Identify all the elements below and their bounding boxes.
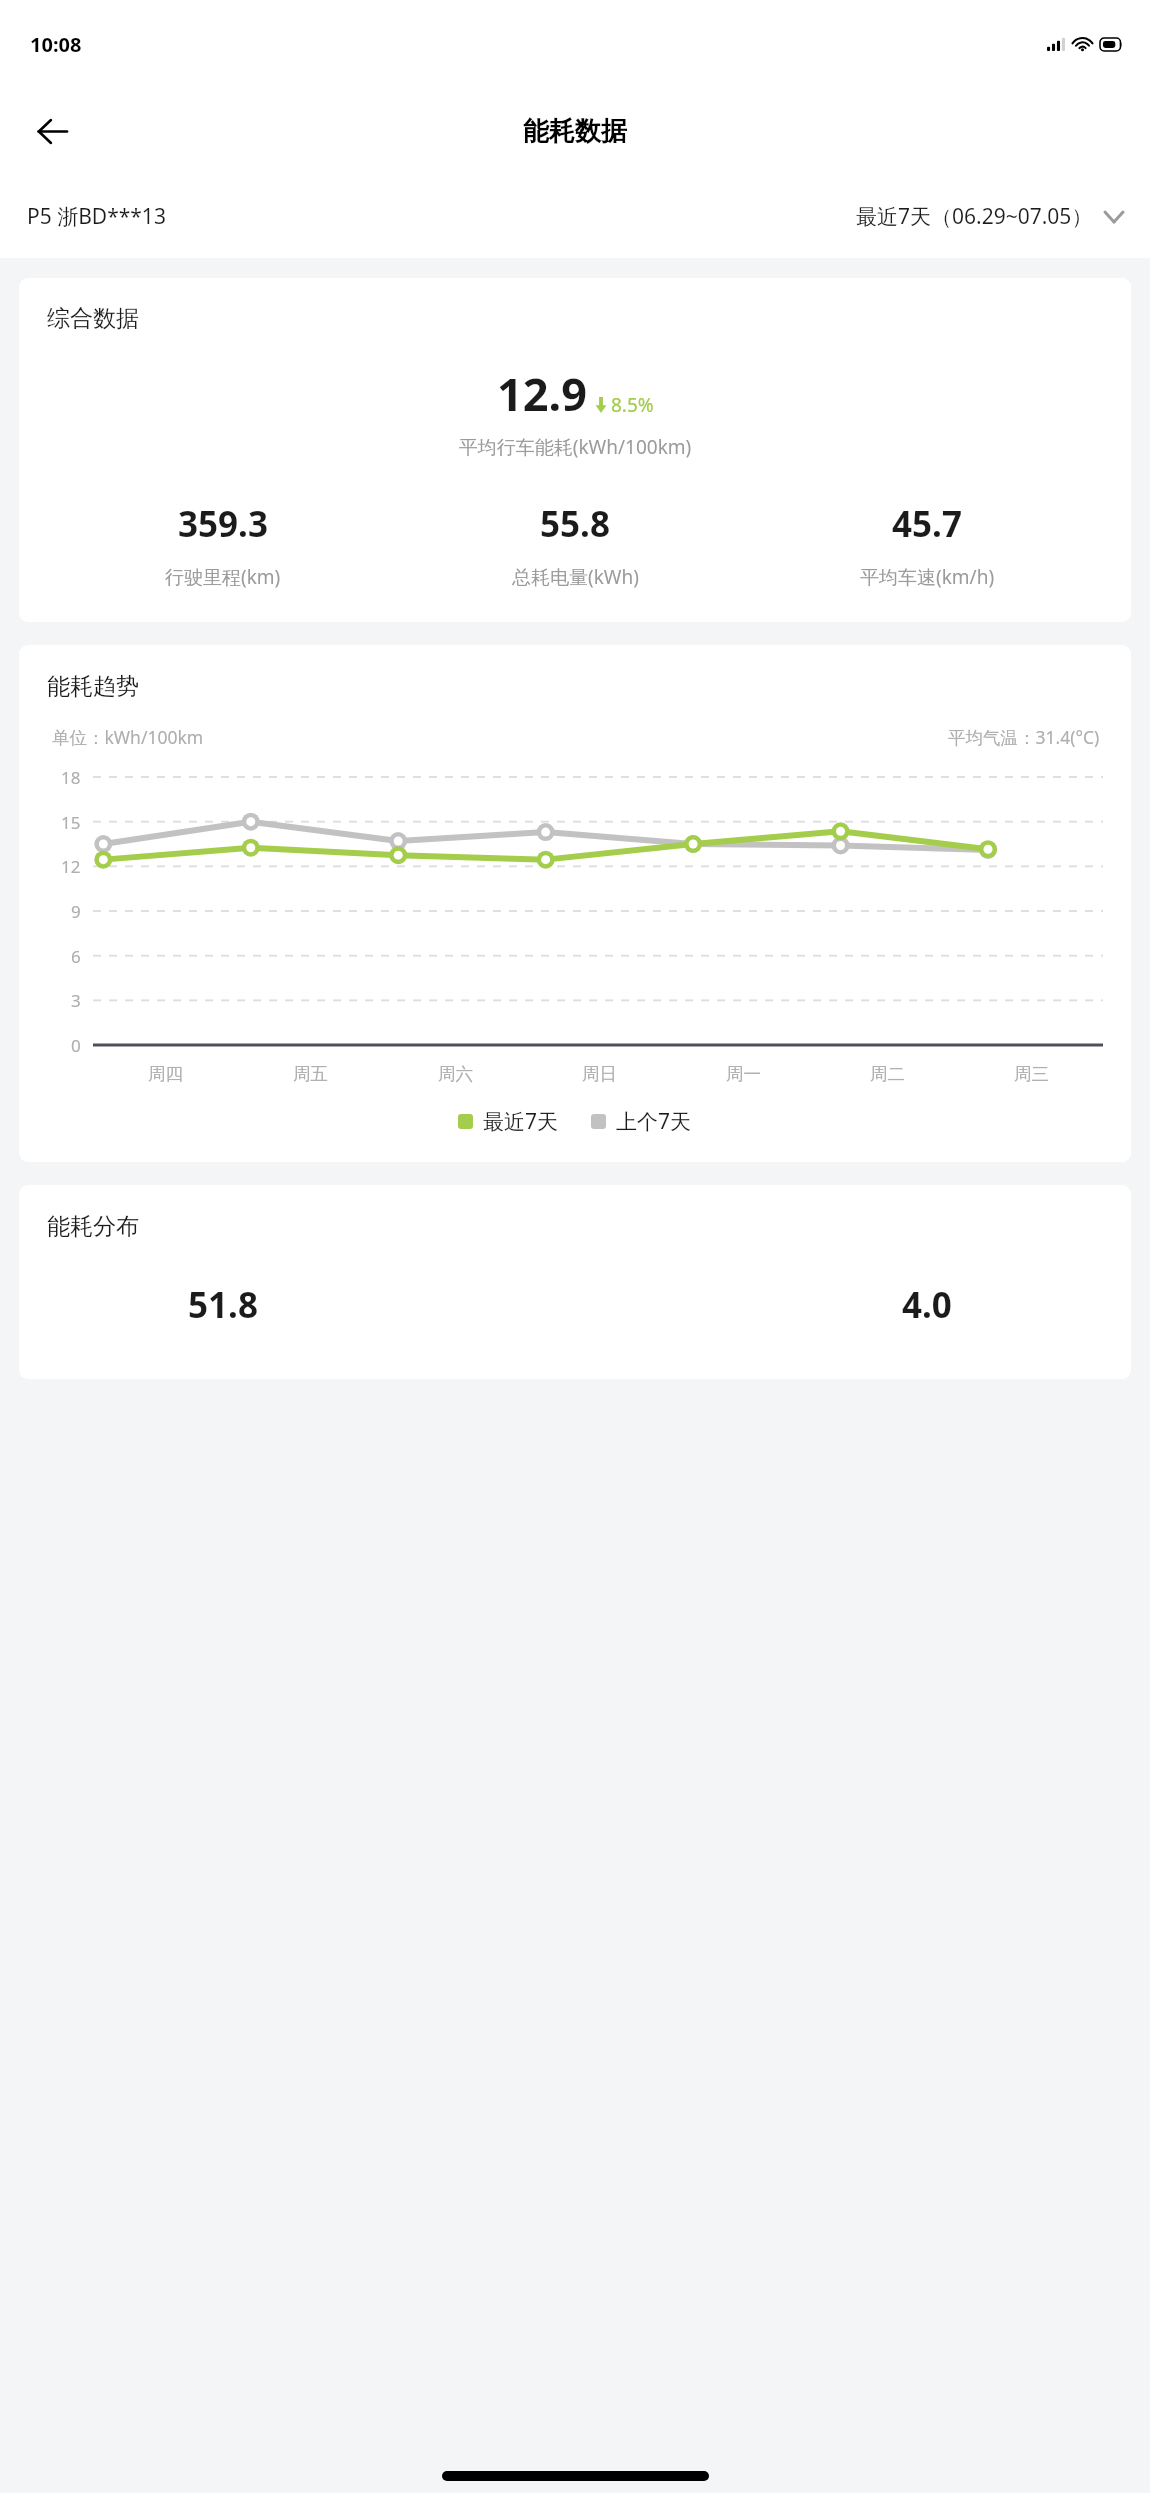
staticText: 12.9 [497,363,587,424]
staticText: 最近7天 [483,1107,559,1136]
staticText: 8.5% [611,392,654,418]
staticText: 平均气温：31.4(°C) [948,725,1100,749]
staticText: 4.0 [902,1281,952,1329]
button[interactable]: 45.7 [751,500,1103,590]
staticText: P5 浙BD***13 [27,202,166,231]
button[interactable]: Back [20,99,84,163]
staticText: 周三 [1014,1063,1049,1085]
staticText: 359.3 [178,500,268,548]
button[interactable]: 最近7天 [458,1107,559,1136]
staticText: 周四 [148,1063,183,1085]
staticText: 行驶里程(km) [165,564,281,590]
staticText: 0 [71,1034,81,1057]
staticText: 15 [61,811,81,834]
button[interactable]: 359.3 [47,500,399,590]
staticText: 6 [71,945,81,968]
button[interactable]: 55.8 [399,500,751,590]
staticText: 平均行车能耗(kWh/100km) [47,434,1103,460]
staticText: 10:08 [30,31,82,58]
staticText: 周六 [438,1063,473,1085]
staticText: 12 [61,855,81,878]
staticText: 9 [71,900,81,923]
staticText: 18 [61,766,81,789]
staticText: 能耗趋势 [47,672,139,701]
staticText: 45.7 [892,500,962,548]
staticText: 综合数据 [47,304,139,333]
staticText: 周一 [726,1063,761,1085]
staticText: 上个7天 [616,1107,692,1136]
staticText: 55.8 [540,500,610,548]
button[interactable]: 最近7天（06.29~07.05） [856,194,1123,239]
staticText: 能耗数据 [523,115,627,148]
staticText: 最近7天（06.29~07.05） [856,202,1093,231]
staticText: 周日 [582,1063,617,1085]
button[interactable]: P5 浙BD***13 [27,194,166,239]
staticText: 周二 [870,1063,905,1085]
staticText: 3 [71,989,81,1012]
staticText: 周五 [293,1063,328,1085]
staticText: 能耗分布 [47,1212,139,1241]
staticText: 总耗电量(kWh) [512,564,639,590]
staticText: 51.8 [188,1281,258,1329]
staticText: 单位：kWh/100km [52,725,204,749]
staticText: 平均车速(km/h) [860,564,995,590]
button[interactable]: 上个7天 [591,1107,692,1136]
